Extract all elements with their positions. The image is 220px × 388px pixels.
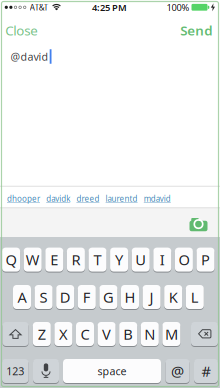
staticText: D [60, 287, 71, 307]
staticText: G [103, 287, 114, 307]
button[interactable]: X [54, 321, 72, 346]
button[interactable]: C [76, 321, 94, 346]
staticText: V [102, 324, 111, 344]
button[interactable]: @ [165, 358, 189, 383]
staticText: 100% [166, 1, 189, 13]
button[interactable]: Y [110, 247, 128, 272]
staticText: davidk [46, 193, 70, 204]
button[interactable]: L [186, 284, 204, 309]
staticText: P [201, 250, 210, 269]
button[interactable]: mdavid [144, 193, 171, 204]
button[interactable]: dhooper [7, 193, 40, 204]
button[interactable]: Shift [2, 321, 28, 346]
button[interactable]: F [78, 284, 96, 309]
staticText: Q [6, 250, 17, 269]
staticText: 4:25 PM [92, 1, 127, 13]
staticText: R [71, 250, 80, 269]
staticText: M [165, 324, 178, 344]
button[interactable]: J [143, 284, 161, 309]
button[interactable]: P [196, 247, 214, 272]
button[interactable]: Delete [191, 321, 218, 346]
staticText: W [26, 250, 40, 269]
button[interactable]: dreed [76, 193, 99, 204]
button[interactable]: S [35, 284, 53, 309]
staticText: E [50, 250, 58, 269]
button[interactable]: R [67, 247, 85, 272]
button[interactable]: U [132, 247, 150, 272]
button[interactable]: N [141, 321, 159, 346]
staticText: space [97, 364, 126, 378]
staticText: F [83, 287, 91, 307]
staticText: dreed [76, 193, 99, 204]
button[interactable]: space [63, 358, 161, 383]
staticText: K [169, 287, 178, 307]
button[interactable]: Send [174, 20, 218, 40]
button[interactable]: W [24, 247, 42, 272]
staticText: I [160, 250, 165, 269]
staticText: @ [171, 361, 184, 381]
staticText: X [59, 324, 68, 344]
staticText: Y [115, 250, 123, 269]
button[interactable]: Close [0, 20, 44, 40]
staticText: Close [5, 21, 38, 39]
button[interactable]: Q [2, 247, 20, 272]
button[interactable]: O [175, 247, 193, 272]
staticText: O [178, 250, 189, 269]
staticText: 123 [6, 364, 24, 378]
staticText: Z [38, 324, 46, 344]
button[interactable]: Dictate [33, 358, 59, 383]
button[interactable]: Add photo [185, 211, 211, 235]
staticText: T [93, 250, 101, 269]
button[interactable]: D [56, 284, 74, 309]
staticText: L [191, 287, 199, 307]
button[interactable]: davidk [46, 193, 70, 204]
button[interactable]: 123 [2, 358, 28, 383]
button[interactable]: # [194, 358, 218, 383]
button[interactable]: Z [33, 321, 51, 346]
button[interactable]: K [164, 284, 182, 309]
staticText: laurentd [106, 193, 138, 204]
staticText: mdavid [144, 193, 171, 204]
staticText: # [201, 361, 210, 381]
button[interactable]: laurentd [106, 193, 138, 204]
staticText: S [40, 287, 48, 307]
button[interactable]: A [13, 284, 31, 309]
staticText: H [124, 287, 135, 307]
button[interactable]: G [99, 284, 117, 309]
button[interactable]: M [162, 321, 180, 346]
staticText: Send [180, 21, 212, 39]
staticText: AT&T [30, 2, 48, 13]
button[interactable]: V [98, 321, 116, 346]
staticText: J [150, 287, 154, 307]
staticText: N [144, 324, 155, 344]
button[interactable]: T [88, 247, 106, 272]
staticText: U [135, 250, 146, 269]
button[interactable]: I [153, 247, 171, 272]
staticText: @david [10, 49, 48, 64]
staticText: dhooper [7, 193, 40, 204]
button[interactable]: B [119, 321, 137, 346]
button[interactable]: H [121, 284, 139, 309]
staticText: C [80, 324, 89, 344]
staticText: B [123, 324, 133, 344]
button[interactable]: E [45, 247, 63, 272]
staticText: A [17, 287, 26, 307]
